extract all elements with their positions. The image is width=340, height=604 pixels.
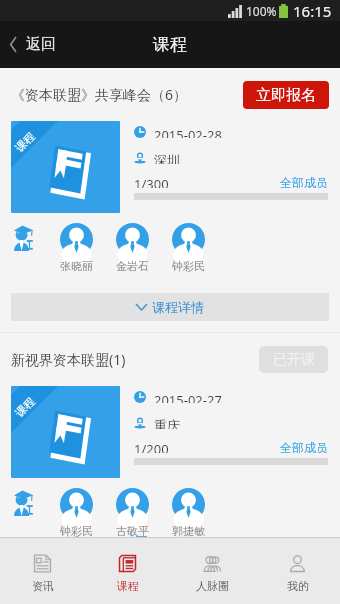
staticText: 深圳 xyxy=(154,152,180,164)
button[interactable]: 立即报名 xyxy=(243,81,329,109)
staticText: 课程详情 xyxy=(152,299,204,315)
button[interactable]: 张晓丽 xyxy=(48,223,104,273)
button[interactable]: 课程 xyxy=(85,538,170,604)
button[interactable]: 全部成员 xyxy=(280,440,328,453)
button[interactable]: 全部成员 xyxy=(280,175,328,188)
staticText: 课程 xyxy=(153,34,187,55)
staticText: 郭捷敏 xyxy=(172,524,205,537)
staticText: 钟彩民 xyxy=(172,259,205,273)
button[interactable]: 金岩石 xyxy=(104,223,160,273)
button[interactable]: 人脉圈 xyxy=(170,538,255,604)
button[interactable]: 我的 xyxy=(255,538,340,604)
button[interactable]: 资讯 xyxy=(0,538,85,604)
button[interactable]: 郭捷敏 xyxy=(160,488,216,537)
staticText: 100% xyxy=(246,3,277,19)
staticText: 资讯 xyxy=(32,579,54,593)
staticText: 我的 xyxy=(287,579,309,593)
staticText: 新视界资本联盟(1) xyxy=(11,350,126,369)
button[interactable]: 钟彩民 xyxy=(160,223,216,273)
staticText: 2015-02-28 xyxy=(154,126,222,138)
button[interactable]: 课程封面 xyxy=(11,386,120,478)
button[interactable]: 已开课 xyxy=(259,346,328,373)
button[interactable]: 返回 xyxy=(0,21,70,68)
staticText: 全部成员 xyxy=(280,440,328,453)
staticText: 课程 xyxy=(117,579,139,593)
staticText: 16:15 xyxy=(293,1,332,21)
staticText: 金岩石 xyxy=(116,259,149,273)
staticText: 人脉圈 xyxy=(196,579,229,593)
staticText: 返回 xyxy=(26,35,56,54)
staticText: 立即报名 xyxy=(256,86,316,105)
staticText: 已开课 xyxy=(273,351,315,369)
staticText: 《资本联盟》共享峰会（6） xyxy=(11,85,188,104)
staticText: 钟彩民 xyxy=(60,524,93,537)
staticText: 1/200 xyxy=(134,440,169,453)
staticText: 全部成员 xyxy=(280,175,328,188)
staticText: 张晓丽 xyxy=(60,259,93,273)
button[interactable]: 钟彩民 xyxy=(48,488,104,537)
staticText: 重庆 xyxy=(154,417,180,429)
staticText: 2015-02-27 xyxy=(154,391,222,403)
button[interactable]: 课程详情 xyxy=(11,293,329,321)
staticText: 课程 xyxy=(12,129,38,155)
staticText: 1/300 xyxy=(134,175,169,188)
button[interactable]: 古敬平 xyxy=(104,488,160,537)
button[interactable]: 课程封面 xyxy=(11,121,120,213)
staticText: 课程 xyxy=(12,394,38,420)
staticText: 古敬平 xyxy=(116,524,149,537)
